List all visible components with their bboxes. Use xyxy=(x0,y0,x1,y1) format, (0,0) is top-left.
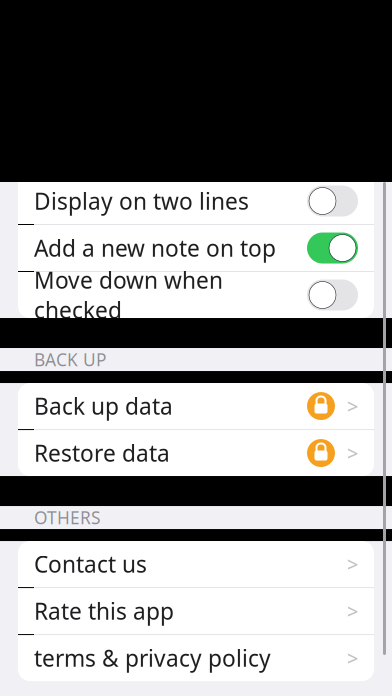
staticText: Add a new note on top xyxy=(34,233,276,263)
staticText: > xyxy=(347,645,358,671)
staticText: Rate this app xyxy=(34,596,174,626)
button[interactable]: Display on two lines xyxy=(18,178,374,224)
staticText: > xyxy=(347,440,358,466)
staticText: terms & privacy policy xyxy=(34,643,271,673)
button[interactable]: terms & privacy policy xyxy=(18,635,374,681)
staticText: > xyxy=(347,393,358,419)
staticText: > xyxy=(347,551,358,577)
staticText: OTHERS xyxy=(34,506,101,529)
staticText: BACK UP xyxy=(34,348,106,371)
staticText: Restore data xyxy=(34,438,170,468)
staticText: Contact us xyxy=(34,549,147,579)
button[interactable]: Contact us xyxy=(18,541,374,587)
staticText: Move down when checked xyxy=(34,265,223,325)
button[interactable]: Back up data xyxy=(18,383,374,429)
button[interactable]: Restore data xyxy=(18,430,374,476)
staticText: Back up data xyxy=(34,391,173,421)
staticText: > xyxy=(347,598,358,624)
button[interactable]: Rate this app xyxy=(18,588,374,634)
button[interactable]: Move down when checked xyxy=(18,272,374,318)
staticText: Display on two lines xyxy=(34,186,249,216)
button[interactable]: Add a new note on top xyxy=(18,225,374,271)
